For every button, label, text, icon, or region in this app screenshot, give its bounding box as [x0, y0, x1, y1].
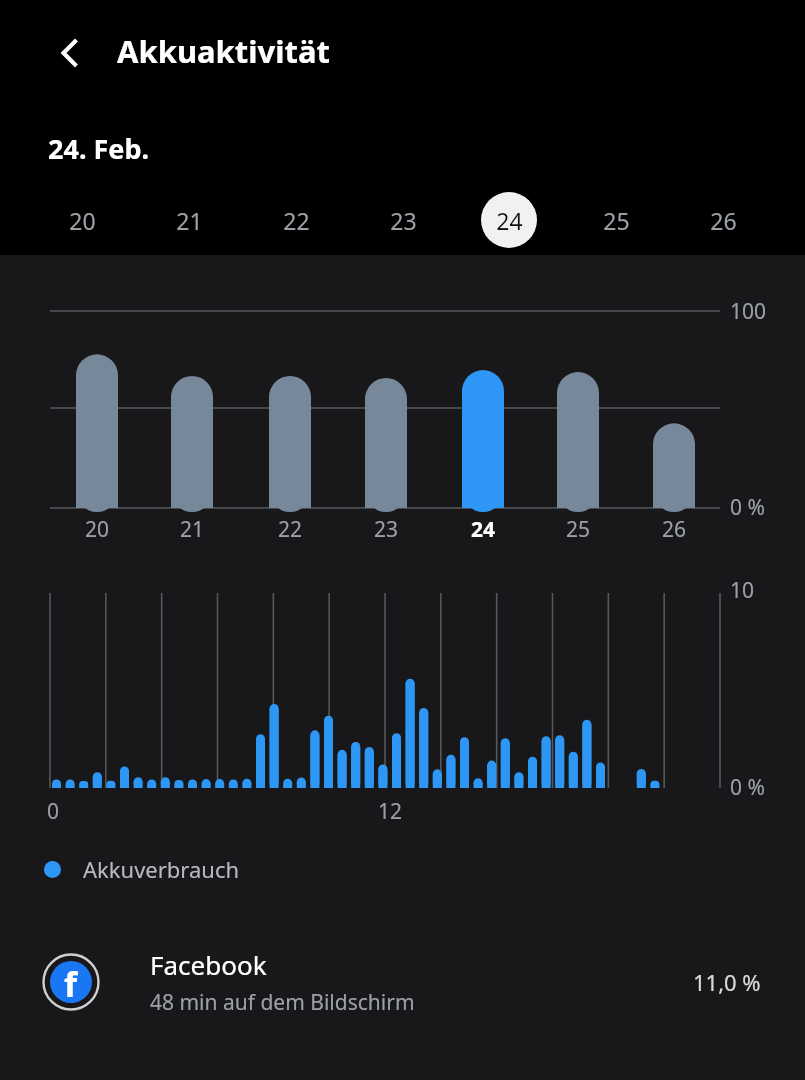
staticText: 20 [67, 515, 127, 544]
staticText: 10 [730, 576, 755, 605]
staticText: 0 [47, 797, 60, 826]
button[interactable]: 23 [371, 192, 435, 248]
button[interactable]: Akkuverbrauch [44, 852, 240, 886]
staticText: 25 [603, 205, 630, 236]
staticText: 11,0 % [693, 967, 761, 997]
staticText: 0 % [730, 773, 765, 802]
staticText: 100 [730, 297, 767, 326]
button[interactable]: 22 [264, 192, 328, 248]
button[interactable]: 26 [691, 192, 755, 248]
button[interactable]: Back [40, 22, 102, 84]
staticText: Akkuaktivität [117, 30, 331, 72]
staticText: 24 [453, 515, 513, 544]
staticText: 21 [162, 515, 222, 544]
staticText: 23 [356, 515, 416, 544]
staticText: 26 [644, 515, 704, 544]
button[interactable]: 24 [477, 192, 541, 248]
staticText: 24 [496, 205, 523, 236]
staticText: 48 min auf dem Bildschirm [150, 988, 415, 1017]
button[interactable]: 25 [584, 192, 648, 248]
button[interactable]: 20 [50, 192, 114, 248]
button[interactable]: f [0, 934, 805, 1030]
staticText: 23 [390, 205, 417, 236]
button[interactable]: 21 [157, 192, 221, 248]
staticText: 0 % [730, 493, 765, 522]
staticText: 22 [283, 205, 310, 236]
staticText: 21 [176, 205, 203, 236]
staticText: 20 [69, 205, 96, 236]
staticText: 26 [710, 205, 737, 236]
staticText: 12 [378, 797, 403, 826]
staticText: Akkuverbrauch [83, 854, 240, 884]
staticText: 25 [548, 515, 608, 544]
staticText: Facebook [150, 947, 267, 982]
staticText: 22 [260, 515, 320, 544]
staticText: f [64, 961, 78, 1003]
staticText: 24. Feb. [48, 130, 150, 167]
